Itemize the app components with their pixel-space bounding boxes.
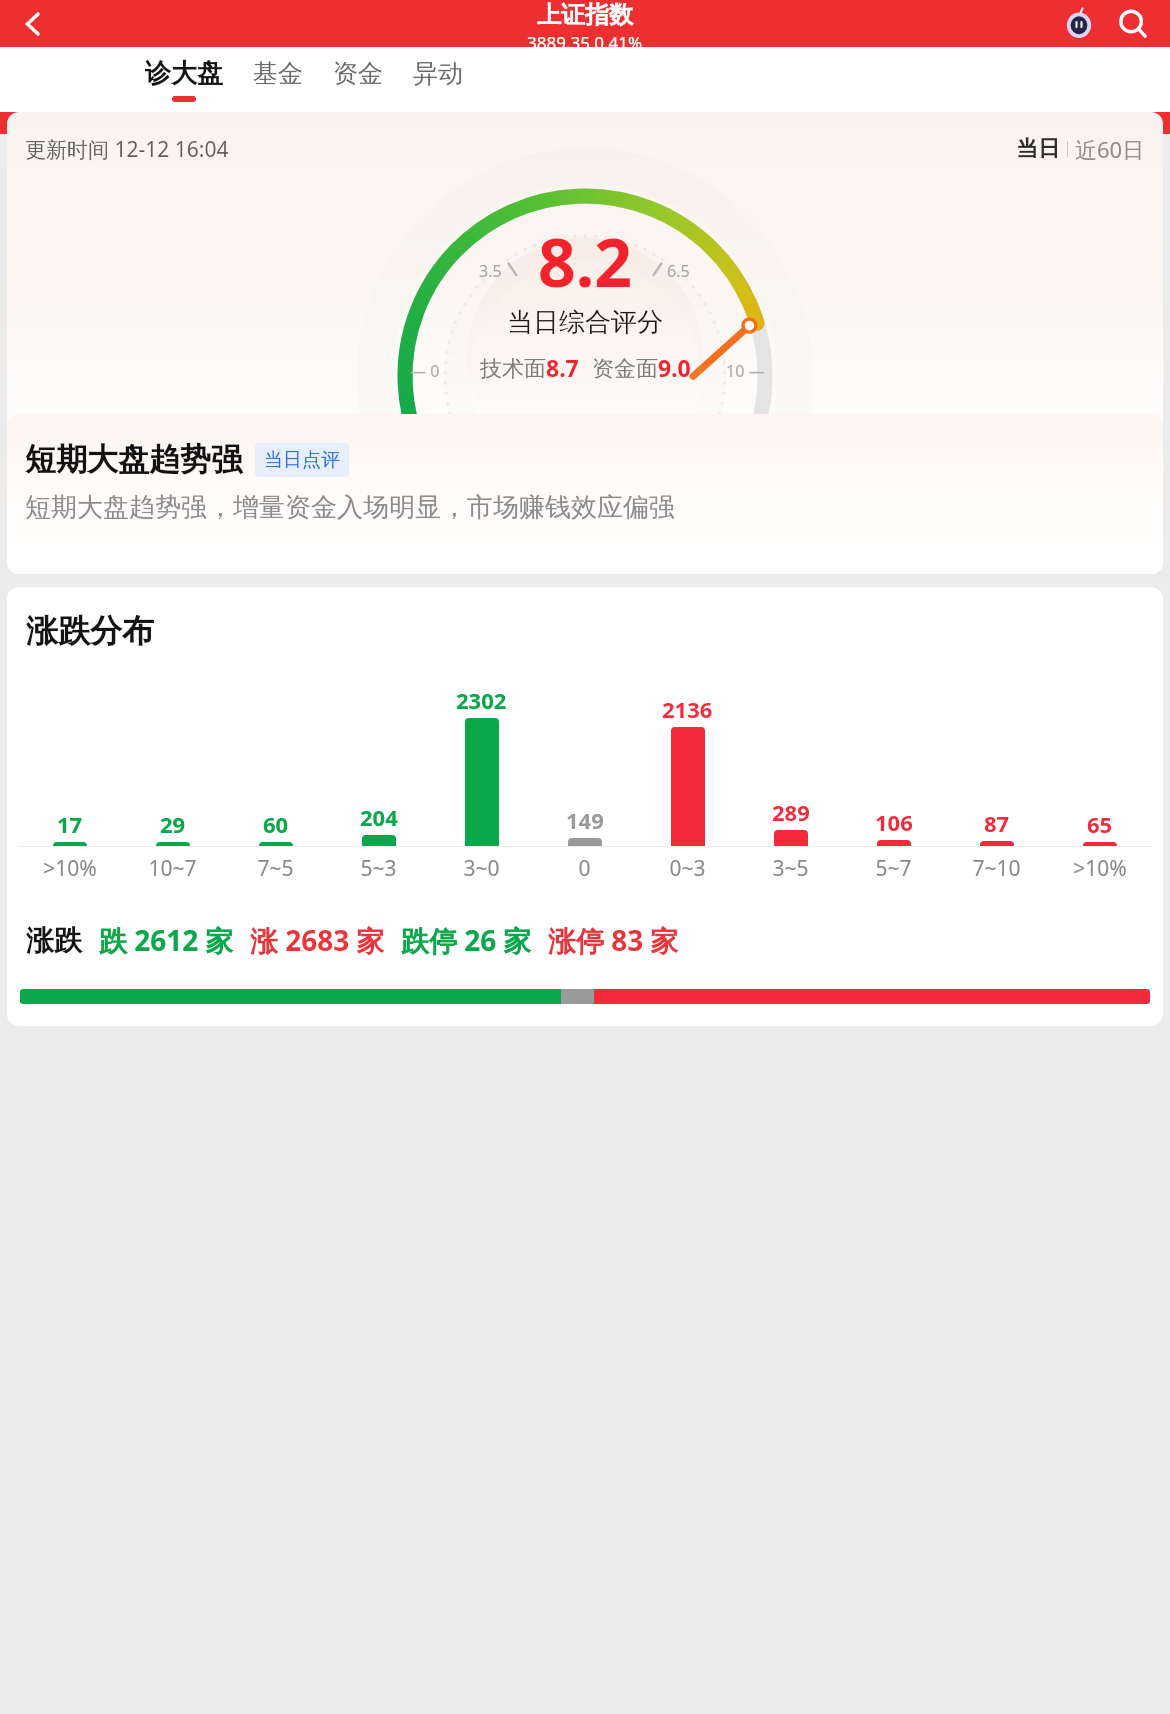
staticText: 8.7 [546, 352, 579, 383]
staticText: 149 [566, 805, 604, 835]
staticText: 5~7 [875, 854, 912, 883]
staticText: 29 [160, 809, 186, 839]
staticText: 近60日 [1075, 134, 1145, 164]
staticText: 7~5 [257, 854, 294, 883]
staticText: 更新时间 12-12 16:04 [25, 135, 229, 164]
staticText: 2302 [456, 685, 507, 715]
button[interactable]: Back [4, 0, 62, 47]
staticText: 289 [772, 797, 810, 827]
staticText: 跌停 26 家 [401, 921, 532, 959]
staticText: 6.5 [667, 260, 690, 282]
staticText: 0~3 [669, 854, 706, 883]
staticText: 异动 [413, 58, 463, 89]
staticText: 7~10 [972, 854, 1021, 883]
staticText: 基金 [253, 58, 303, 89]
staticText: 涨停 83 家 [548, 921, 679, 959]
staticText: 10~7 [148, 854, 197, 883]
staticText: 3~5 [772, 854, 809, 883]
button[interactable]: 短期大盘趋势强 [7, 414, 1163, 574]
staticText: 技术面 [480, 355, 546, 383]
staticText: 5~3 [360, 854, 397, 883]
button[interactable]: 异动 [411, 55, 465, 104]
staticText: 204 [360, 802, 398, 832]
staticText: 资金 [333, 58, 383, 89]
button[interactable]: 涨跌分布 [7, 587, 1163, 1026]
staticText: 涨 2683 家 [250, 921, 385, 959]
staticText: — 0 [410, 360, 440, 382]
staticText: 87 [984, 808, 1010, 838]
button[interactable]: 诊大盘 [143, 54, 225, 105]
staticText: 2136 [662, 694, 713, 724]
staticText: 短期大盘趋势强 [25, 440, 242, 479]
staticText: 9.0 [658, 352, 691, 383]
button[interactable]: 当日点评 [264, 448, 340, 472]
staticText: 10 — [726, 360, 765, 382]
staticText: 当日综合评分 [507, 306, 663, 339]
staticText: 17 [57, 809, 83, 839]
button[interactable]: 更新时间 12-12 16:04 [7, 112, 1163, 574]
button[interactable]: 基金 [251, 55, 305, 104]
staticText: 106 [875, 807, 913, 837]
button[interactable]: Search [1108, 0, 1158, 47]
staticText: 跌 2612 家 [99, 921, 234, 959]
button[interactable]: 资金 [331, 55, 385, 104]
staticText: 当日点评 [264, 448, 340, 472]
staticText: 短期大盘趋势强，增量资金入场明显，市场赚钱效应偏强 [25, 491, 675, 524]
staticText: 诊大盘 [145, 57, 223, 90]
staticText: >10% [1073, 854, 1127, 883]
staticText: >10% [43, 854, 97, 883]
staticText: 65 [1087, 809, 1113, 839]
button[interactable]: 近60日 [1075, 134, 1145, 164]
staticText: 3~0 [463, 854, 500, 883]
button[interactable]: AI assistant [1054, 0, 1104, 47]
staticText: 8.2 [538, 216, 633, 306]
staticText: 上证指数 [537, 0, 633, 30]
staticText: 资金面 [592, 355, 658, 383]
staticText: 0 [578, 854, 591, 883]
button[interactable]: 当日 [1016, 135, 1060, 163]
staticText: 3889.35 0.41% [527, 31, 643, 47]
staticText: 涨跌分布 [26, 611, 154, 651]
staticText: 涨跌 [26, 923, 82, 958]
staticText: 3.5 [479, 260, 502, 282]
staticText: 当日 [1016, 135, 1060, 163]
staticText: 60 [263, 809, 289, 839]
